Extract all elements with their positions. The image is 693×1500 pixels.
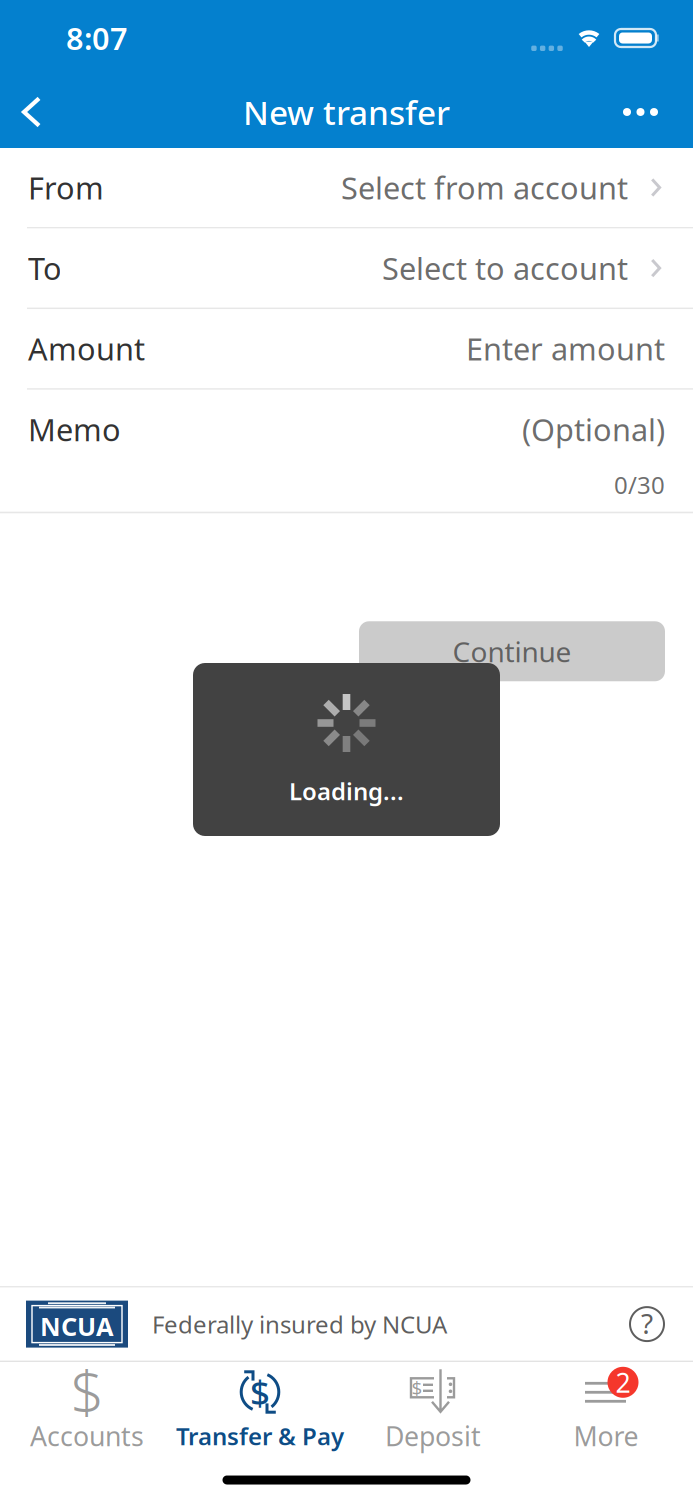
staticText: Select to account xyxy=(382,248,628,288)
staticText: Federally insured by NCUA xyxy=(152,1308,447,1340)
staticText: 2 xyxy=(615,1365,630,1400)
button[interactable]: To xyxy=(0,229,693,308)
staticText: Accounts xyxy=(30,1418,144,1454)
button[interactable]: $ xyxy=(0,1362,173,1460)
staticText: Deposit xyxy=(385,1418,481,1454)
staticText: 8:07 xyxy=(66,18,128,58)
button[interactable]: $ xyxy=(173,1362,346,1460)
button[interactable]: Continue xyxy=(359,621,665,681)
staticText: To xyxy=(28,248,62,288)
button[interactable]: Back xyxy=(0,76,64,148)
staticText: More xyxy=(573,1418,638,1454)
staticText: Transfer & Pay xyxy=(176,1420,344,1452)
staticText: From xyxy=(28,167,104,208)
staticText: Loading... xyxy=(289,775,404,807)
button[interactable]: Amount xyxy=(0,309,693,388)
staticText: (Optional) xyxy=(522,409,665,450)
staticText: NCUA xyxy=(40,1309,114,1343)
staticText: New transfer xyxy=(243,90,450,134)
staticText: Continue xyxy=(452,633,571,670)
button[interactable]: From xyxy=(0,148,693,227)
button[interactable]: 2 xyxy=(519,1362,692,1460)
button[interactable]: More options xyxy=(588,76,693,148)
staticText: Memo xyxy=(28,409,121,450)
button[interactable]: Help xyxy=(625,1302,693,1346)
button[interactable]: $ xyxy=(346,1362,519,1460)
button[interactable]: Memo xyxy=(0,390,693,512)
staticText: $ xyxy=(70,1352,103,1430)
staticText: ? xyxy=(641,1304,653,1342)
staticText: 0/30 xyxy=(614,469,665,501)
staticText: $ xyxy=(250,1369,270,1415)
staticText: Enter amount xyxy=(466,328,665,369)
staticText: $ xyxy=(411,1375,422,1400)
staticText: Amount xyxy=(28,328,145,369)
staticText: Select from account xyxy=(341,167,628,208)
